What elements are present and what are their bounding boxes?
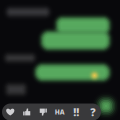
button[interactable]: Laugh bbox=[51, 104, 68, 120]
button[interactable]: Question bbox=[84, 104, 101, 120]
button[interactable]: Love bbox=[2, 104, 18, 120]
staticText: ? bbox=[90, 105, 95, 119]
staticText: !! bbox=[73, 105, 79, 119]
button[interactable]: Emphasize bbox=[68, 104, 84, 120]
button[interactable]: Dislike bbox=[35, 104, 51, 120]
button[interactable]: Like bbox=[18, 104, 35, 120]
staticText: HA bbox=[55, 108, 65, 116]
